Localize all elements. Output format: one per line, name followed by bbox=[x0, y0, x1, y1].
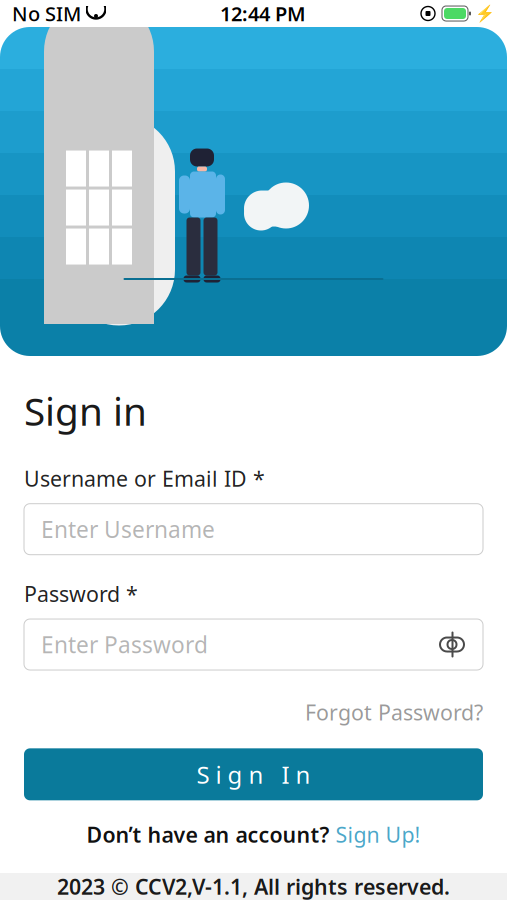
staticText: Password * bbox=[24, 580, 138, 608]
staticText: 12:44 PM bbox=[220, 0, 306, 27]
staticText: S i g n I n bbox=[196, 758, 310, 790]
staticText: Enter Username bbox=[41, 514, 215, 544]
staticText: Sign Up! bbox=[335, 820, 420, 849]
staticText: Sign in bbox=[24, 385, 147, 436]
staticText: 2023 © CCV2,V-1.1, All rights reserved. bbox=[57, 872, 450, 900]
staticText: ⚡ bbox=[475, 4, 495, 23]
staticText: Forgot Password? bbox=[305, 698, 483, 726]
staticText: No SIM bbox=[12, 0, 81, 27]
staticText: Username or Email ID * bbox=[24, 464, 265, 493]
staticText: Enter Password bbox=[41, 629, 208, 660]
button[interactable]: Show password bbox=[438, 630, 483, 658]
button[interactable]: S i g n I n bbox=[24, 748, 483, 800]
button[interactable]: Sign Up! bbox=[335, 820, 420, 849]
staticText: Don’t have an account? bbox=[86, 820, 335, 849]
button[interactable]: Forgot Password? bbox=[305, 692, 483, 732]
